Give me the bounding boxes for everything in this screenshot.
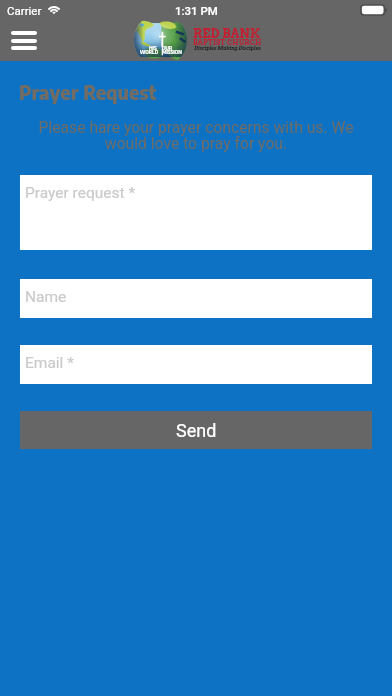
button[interactable]: Email * <box>20 345 372 384</box>
staticText: Send <box>176 420 217 441</box>
staticText: RED BANK <box>193 26 260 41</box>
staticText: Disciples Making Disciples <box>194 45 261 51</box>
staticText: OUR <box>162 45 173 51</box>
staticText: WORLD <box>140 49 159 55</box>
staticText: Carrier <box>7 4 42 17</box>
button[interactable]: Prayer request * <box>20 175 372 250</box>
staticText: Prayer Request <box>19 80 157 105</box>
staticText: BAPTIST CHURCH <box>193 38 262 46</box>
button[interactable]: Menu <box>5 25 42 55</box>
staticText: Email * <box>25 354 74 372</box>
staticText: 1:31 PM <box>175 4 218 17</box>
button[interactable]: Name <box>20 279 372 318</box>
staticText: MISSION <box>162 49 182 55</box>
other: Wi-Fi <box>47 4 61 14</box>
button[interactable]: Send <box>20 411 372 449</box>
staticText: Name <box>25 288 67 306</box>
staticText: Prayer request * <box>25 184 136 202</box>
staticText: Please hare your prayer concerns with us… <box>33 118 359 153</box>
other: Battery <box>361 5 387 15</box>
staticText: HIS <box>149 45 157 51</box>
